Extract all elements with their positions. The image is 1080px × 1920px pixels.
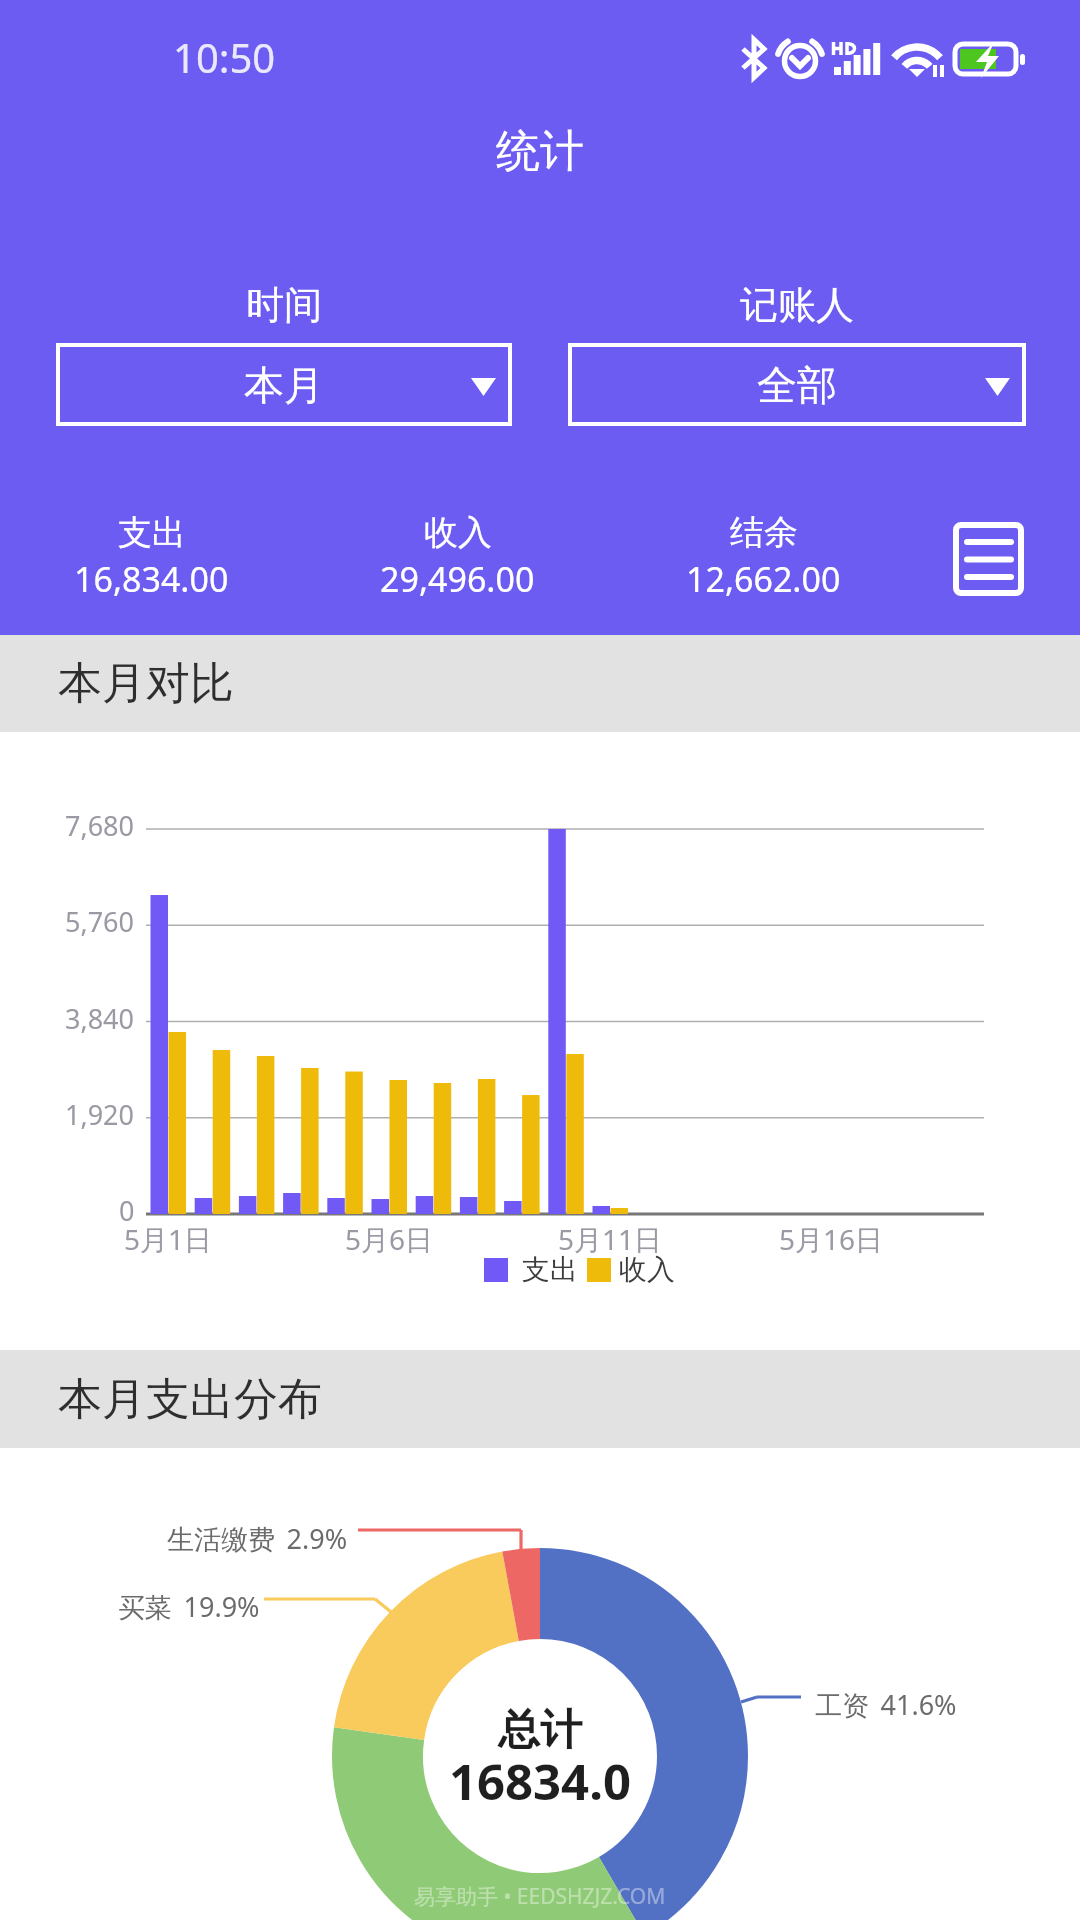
button[interactable]: 账单明细列表 xyxy=(918,502,1058,615)
button[interactable]: 结余 xyxy=(610,505,916,615)
staticText: 0 xyxy=(119,1192,135,1229)
staticText: 记账人 xyxy=(740,281,854,329)
staticText: 支出 xyxy=(522,1252,578,1287)
button[interactable]: 本月 xyxy=(56,343,512,426)
staticText: 生活缴费 2.9% xyxy=(167,1520,348,1557)
staticText: 本月对比 xyxy=(58,656,234,711)
staticText: 收入 xyxy=(424,511,492,554)
staticText: 5,760 xyxy=(65,903,135,940)
staticText: 工资 41.6% xyxy=(815,1686,957,1723)
staticText: 5月16日 xyxy=(779,1220,884,1258)
staticText: 12,662.00 xyxy=(686,556,841,602)
staticText: 16834.0 xyxy=(449,1748,631,1815)
staticText: 5月6日 xyxy=(345,1220,434,1258)
staticText: 3,840 xyxy=(65,1000,135,1037)
staticText: 1,920 xyxy=(65,1096,135,1133)
button[interactable]: 全部 xyxy=(568,343,1026,426)
staticText: 本月 xyxy=(244,360,324,410)
staticText: 5月11日 xyxy=(558,1220,663,1258)
staticText: 结余 xyxy=(730,511,798,554)
staticText: 29,496.00 xyxy=(380,556,535,602)
staticText: 时间 xyxy=(246,281,322,329)
staticText: 5月1日 xyxy=(124,1220,213,1258)
staticText: 7,680 xyxy=(65,807,135,844)
staticText: 统计 xyxy=(496,124,584,179)
staticText: 支出 xyxy=(118,511,186,554)
button[interactable]: 收入 xyxy=(304,505,610,615)
staticText: 16,834.00 xyxy=(74,556,229,602)
staticText: 本月支出分布 xyxy=(58,1372,322,1427)
button[interactable]: 支出 xyxy=(0,505,304,615)
staticText: 总计 xyxy=(498,1704,582,1757)
staticText: 收入 xyxy=(619,1252,675,1287)
staticText: 全部 xyxy=(757,360,837,410)
staticText: 易享助手 • EEDSHZJZ.COM xyxy=(414,1882,666,1911)
staticText: 10:50 xyxy=(173,30,276,84)
staticText: 买菜 19.9% xyxy=(118,1588,260,1625)
